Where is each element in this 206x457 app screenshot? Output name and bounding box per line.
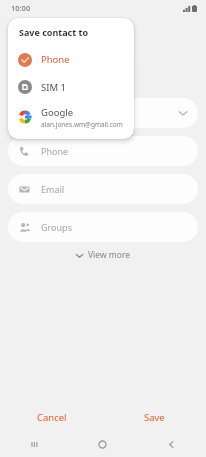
button[interactable]: Cancel [0, 404, 103, 430]
staticText: Cancel [37, 411, 67, 424]
button[interactable]: SIM 1 [8, 73, 134, 101]
button[interactable]: View more [67, 246, 139, 264]
staticText: SIM 1 [41, 81, 66, 94]
staticText: Save contact to [19, 26, 89, 38]
staticText: Phone [41, 53, 70, 66]
button[interactable]: Google [8, 101, 134, 133]
staticText: Phone [41, 145, 69, 157]
button[interactable]: Phone [8, 136, 198, 166]
button[interactable]: Phone [8, 46, 134, 73]
staticText: View more [88, 249, 131, 261]
button[interactable]: Groups [8, 212, 198, 242]
staticText: alan.jones.wm@gmail.com [41, 120, 123, 129]
staticText: Google [41, 106, 74, 119]
button[interactable] [8, 98, 198, 128]
staticText: Email [41, 183, 65, 195]
button[interactable]: Recent apps [0, 431, 68, 457]
button[interactable]: Back [137, 431, 206, 457]
staticText: Save [144, 411, 165, 424]
staticText: 10:00 [11, 3, 31, 13]
button[interactable]: Save [103, 404, 206, 430]
staticText: Groups [41, 221, 72, 233]
button[interactable]: Home [68, 431, 137, 457]
button[interactable]: Email [8, 174, 198, 204]
